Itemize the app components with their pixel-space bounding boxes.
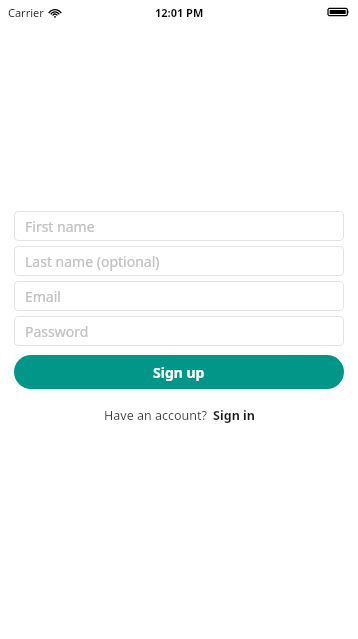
button[interactable]: Last name (optional) (14, 246, 344, 276)
staticText: Email (25, 287, 61, 306)
button[interactable]: Sign in (213, 407, 255, 424)
button[interactable]: Email (14, 281, 344, 311)
button[interactable]: First name (14, 211, 344, 241)
staticText: Carrier (8, 5, 44, 20)
staticText: Password (25, 322, 89, 341)
staticText: Last name (optional) (25, 252, 160, 271)
staticText: 12:01 PM (155, 5, 204, 20)
staticText: First name (25, 217, 95, 236)
staticText: Sign in (213, 407, 255, 424)
staticText: Have an account? (104, 407, 207, 424)
staticText: Sign up (153, 363, 205, 382)
button[interactable]: Sign up (14, 355, 344, 389)
button[interactable]: Password (14, 316, 344, 346)
